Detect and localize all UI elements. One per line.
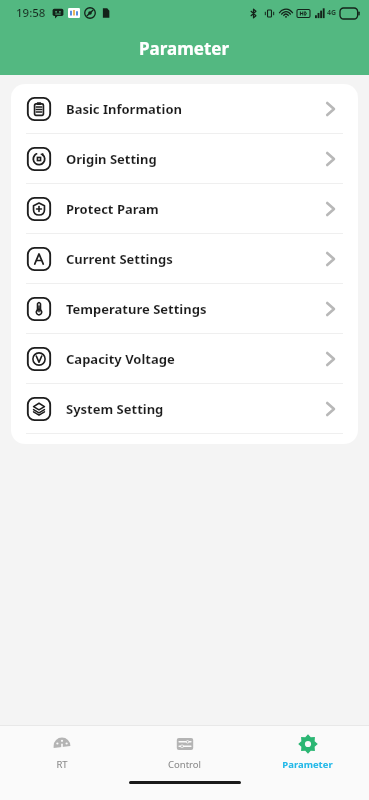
staticText: Control	[168, 758, 201, 771]
staticText: 19:58	[16, 5, 46, 21]
button[interactable]: Capacity Voltage	[11, 334, 358, 383]
staticText: Current Settings	[66, 250, 173, 268]
button[interactable]: RT	[0, 730, 123, 775]
staticText: System Setting	[66, 400, 164, 418]
button[interactable]: Current Settings	[11, 234, 358, 283]
staticText: Protect Param	[66, 200, 159, 218]
button[interactable]: Control	[123, 730, 246, 775]
button[interactable]: Temperature Settings	[11, 284, 358, 333]
staticText: Capacity Voltage	[66, 350, 175, 368]
button[interactable]: System Setting	[11, 384, 358, 433]
staticText: Parameter	[282, 758, 333, 771]
staticText: Parameter	[139, 37, 230, 60]
staticText: RT	[56, 758, 68, 771]
button[interactable]: Basic Information	[11, 84, 358, 133]
button[interactable]: Origin Setting	[11, 134, 358, 183]
staticText: Temperature Settings	[66, 300, 207, 318]
button[interactable]: Parameter	[246, 730, 369, 775]
staticText: Origin Setting	[66, 150, 157, 168]
staticText: Basic Information	[66, 100, 182, 118]
staticText: 4G	[327, 8, 337, 18]
button[interactable]: Protect Param	[11, 184, 358, 233]
